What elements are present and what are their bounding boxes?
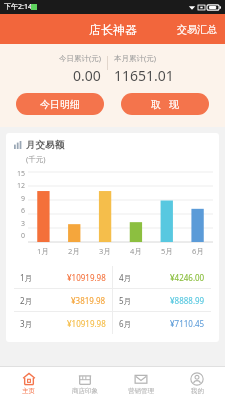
button[interactable]: 取 现	[121, 93, 209, 115]
staticText: 今日明细	[40, 98, 80, 111]
button[interactable]: 商店印象	[57, 367, 113, 400]
staticText: ¥10919.98	[67, 272, 106, 283]
staticText: 0	[21, 231, 26, 241]
staticText: 下午2:14	[4, 2, 32, 12]
staticText: 3	[21, 219, 26, 229]
staticText: ¥7110.45	[170, 318, 205, 329]
staticText: 5月	[161, 246, 173, 256]
staticText: 0.00	[73, 66, 101, 85]
staticText: ¥8888.99	[170, 295, 205, 306]
button[interactable]: 我的	[169, 367, 225, 400]
button[interactable]: 1月	[14, 266, 112, 288]
staticText: 1月	[37, 246, 49, 256]
button[interactable]: 交易汇总	[169, 18, 225, 41]
staticText: 2月	[68, 246, 80, 256]
staticText: 1月	[20, 272, 33, 283]
staticText: 本月累计(元)	[114, 53, 156, 63]
staticText: 3月	[20, 318, 33, 329]
staticText: ¥10919.98	[67, 318, 106, 329]
staticText: 15	[17, 169, 26, 179]
staticText: 6月	[192, 246, 204, 256]
staticText: ¥4246.00	[170, 272, 205, 283]
staticText: 11651.01	[114, 66, 174, 85]
staticText: 主页	[22, 387, 35, 395]
staticText: 3月	[99, 246, 111, 256]
button[interactable]: 今日明细	[16, 93, 104, 115]
staticText: 12	[17, 181, 26, 191]
staticText: 我的	[191, 387, 204, 395]
staticText: (千元)	[26, 154, 46, 164]
staticText: 营销管理	[128, 387, 154, 395]
button[interactable]: 5月	[113, 289, 211, 311]
staticText: 4月	[130, 246, 142, 256]
staticText: 交易汇总	[177, 23, 217, 36]
staticText: 6月	[119, 318, 132, 329]
staticText: 4月	[119, 272, 132, 283]
button[interactable]: 3月	[14, 312, 112, 334]
staticText: 取 现	[151, 97, 179, 111]
staticText: 今日累计(元)	[59, 53, 101, 63]
button[interactable]: 4月	[113, 266, 211, 288]
staticText: ¥3819.98	[71, 295, 106, 306]
staticText: 商店印象	[72, 387, 98, 395]
staticText: 6	[21, 206, 26, 216]
staticText: 9	[21, 194, 26, 204]
button[interactable]: 2月	[14, 289, 112, 311]
button[interactable]: 6月	[113, 312, 211, 334]
staticText: 2月	[20, 295, 33, 306]
staticText: 5月	[119, 295, 132, 306]
staticText: 月交易额	[26, 139, 64, 151]
button[interactable]: 主页	[0, 367, 57, 400]
button[interactable]: 营销管理	[113, 367, 169, 400]
staticText: 店长神器	[89, 22, 137, 37]
